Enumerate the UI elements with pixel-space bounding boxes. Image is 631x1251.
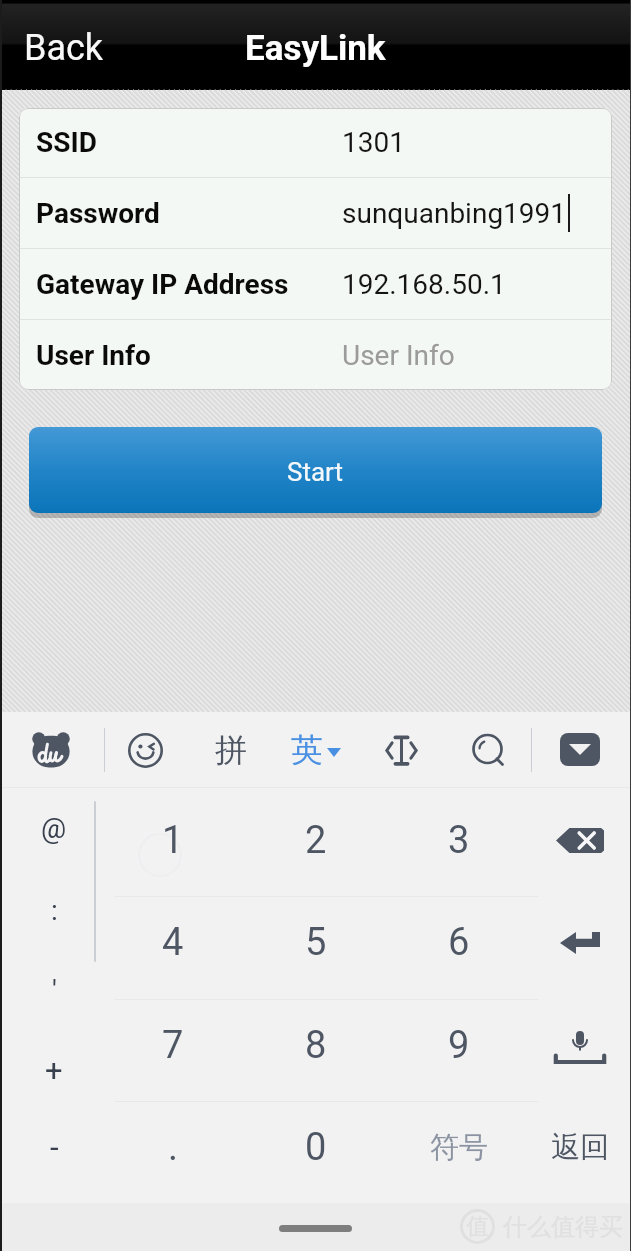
staticText: 1 — [162, 818, 184, 863]
button[interactable]: User Info — [19, 320, 612, 390]
staticText: + — [45, 1052, 63, 1088]
staticText: 9 — [448, 1023, 470, 1068]
staticText: - — [50, 1129, 59, 1165]
button[interactable]: Back — [17, 14, 113, 76]
button[interactable]: 7 — [102, 999, 244, 1102]
staticText: 7 — [162, 1023, 184, 1068]
button[interactable]: Password — [19, 178, 612, 248]
staticText: User Info — [36, 339, 151, 372]
button[interactable]: 3 — [388, 788, 530, 896]
button[interactable]: ' — [0, 954, 108, 1037]
staticText: EasyLink — [245, 28, 386, 69]
button[interactable]: Search — [461, 723, 515, 777]
button[interactable]: 英 — [291, 724, 341, 776]
button[interactable]: : — [0, 871, 108, 954]
button[interactable]: 8 — [245, 999, 387, 1102]
staticText: User Info — [342, 339, 455, 372]
staticText: SSID — [36, 126, 97, 159]
staticText: 1301 — [342, 126, 405, 159]
button[interactable]: + — [0, 1037, 108, 1120]
staticText: 符号 — [430, 1129, 488, 1166]
staticText: Start — [287, 457, 344, 487]
button[interactable]: Emoji — [118, 723, 172, 777]
staticText: 返回 — [551, 1129, 609, 1166]
staticText: 0 — [305, 1125, 327, 1170]
staticText: 4 — [162, 920, 184, 965]
staticText: 5 — [305, 920, 327, 965]
staticText: : — [51, 894, 58, 927]
staticText: 英 — [291, 730, 323, 770]
staticText: 192.168.50.1 — [342, 268, 506, 301]
button[interactable]: Back — [534, 1101, 626, 1203]
staticText: Gateway IP Address — [36, 268, 289, 301]
staticText: 3 — [448, 818, 470, 863]
button[interactable]: 拼 — [205, 724, 257, 776]
button[interactable]: Delete — [534, 788, 626, 896]
staticText: 2 — [305, 818, 327, 863]
button[interactable]: 6 — [388, 896, 530, 999]
button[interactable]: Enter — [534, 896, 626, 999]
staticText: 什么值得买 — [503, 1212, 623, 1242]
staticText: 8 — [305, 1023, 327, 1068]
button[interactable]: - — [0, 1120, 108, 1203]
button[interactable]: 5 — [245, 896, 387, 999]
button[interactable]: 2 — [245, 788, 387, 896]
staticText: @ — [41, 812, 67, 845]
button[interactable]: . — [102, 1101, 244, 1203]
button[interactable]: Gateway IP Address — [19, 249, 612, 319]
button[interactable]: 1 — [102, 788, 244, 896]
button[interactable]: 4 — [102, 896, 244, 999]
button[interactable]: Baidu input method — [24, 723, 78, 777]
button[interactable]: Voice input — [534, 999, 626, 1102]
staticText: 值 — [466, 1212, 489, 1241]
button[interactable]: 0 — [245, 1101, 387, 1203]
button[interactable]: Handwriting input — [374, 723, 428, 777]
staticText: sunquanbing1991 — [342, 197, 567, 230]
button[interactable]: SSID — [19, 108, 612, 177]
button[interactable]: Hide keyboard — [560, 733, 600, 766]
staticText: Password — [36, 197, 160, 230]
button[interactable]: 符号 — [388, 1101, 530, 1203]
staticText: ' — [52, 974, 57, 1007]
button[interactable]: @ — [0, 788, 108, 871]
staticText: Back — [24, 27, 104, 69]
staticText: 拼 — [215, 730, 247, 770]
button[interactable]: Start — [29, 427, 602, 513]
staticText: 6 — [448, 920, 470, 965]
button[interactable]: 9 — [388, 999, 530, 1102]
staticText: . — [168, 1125, 179, 1170]
